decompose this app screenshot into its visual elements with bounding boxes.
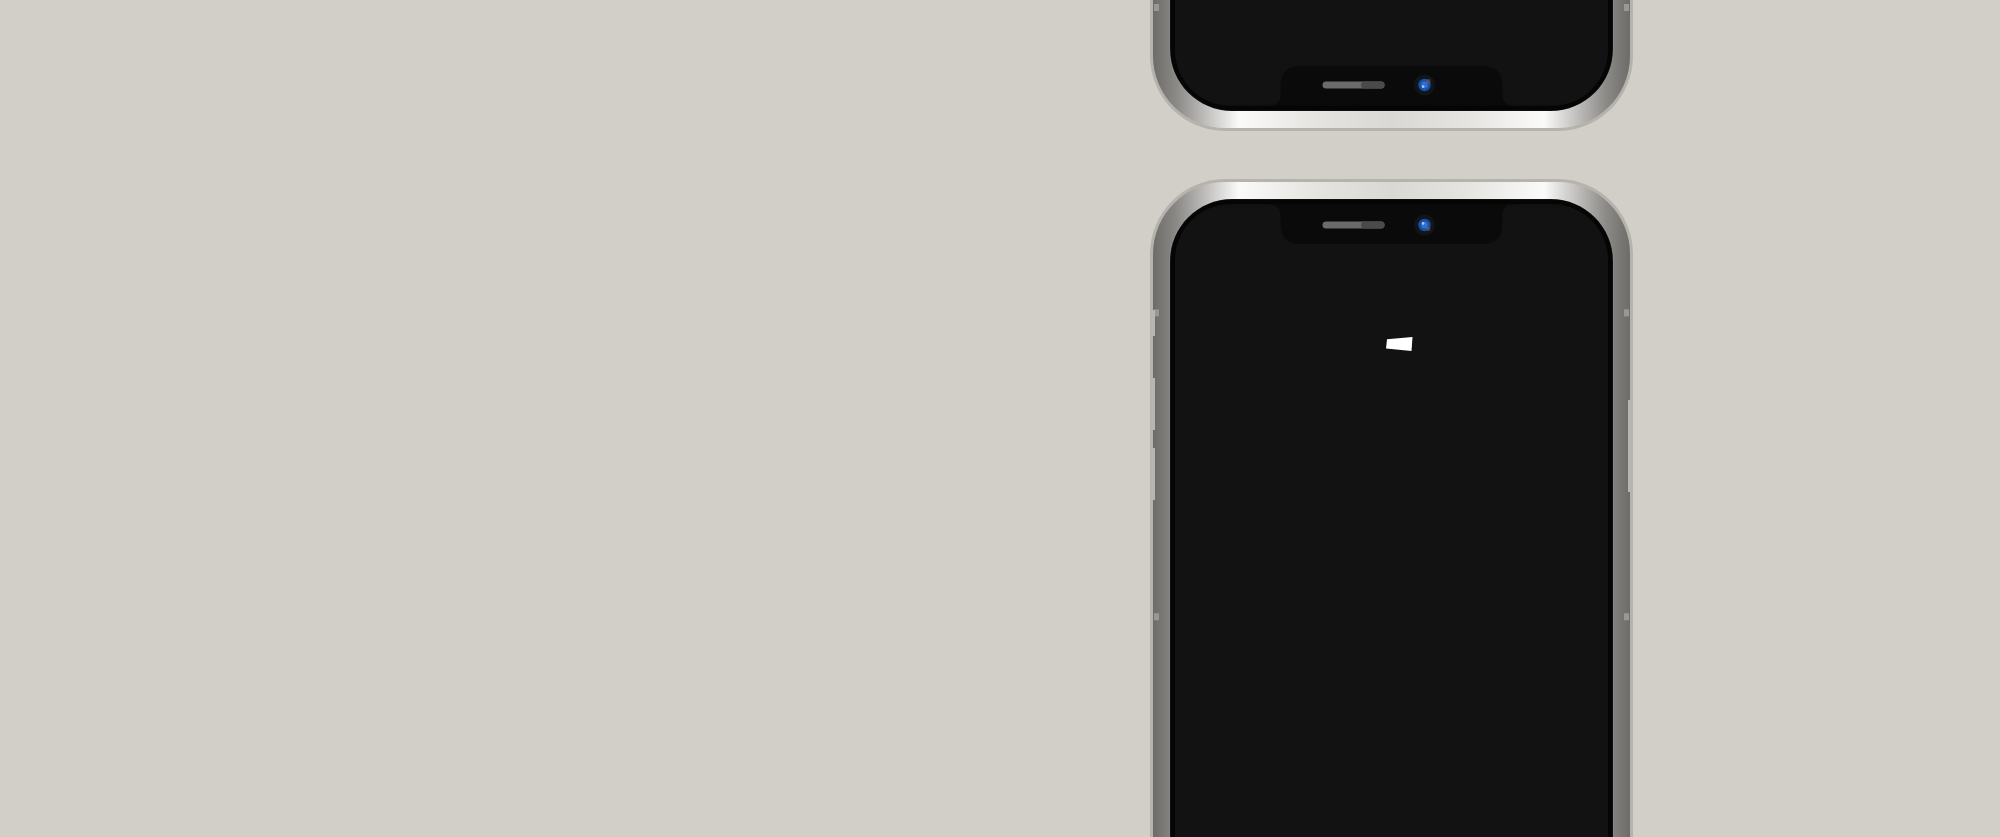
button[interactable]: App splash screen mockup: [0, 0, 2000, 837]
